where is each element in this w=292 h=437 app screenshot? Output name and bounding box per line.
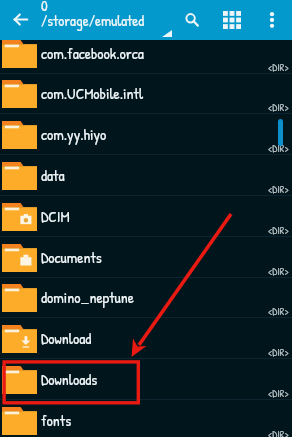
button[interactable]: com.yy.hiyo xyxy=(0,114,292,155)
button[interactable]: More options xyxy=(252,0,292,40)
button[interactable]: com.facebook.orca xyxy=(0,33,292,74)
button[interactable]: Back xyxy=(0,0,40,40)
staticText: <DIR> xyxy=(268,386,289,400)
button[interactable]: DCIM xyxy=(0,196,292,237)
button[interactable]: domino_neptune xyxy=(0,277,292,318)
staticText: 0 xyxy=(41,0,48,15)
staticText: DCIM xyxy=(41,206,70,227)
staticText: <DIR> xyxy=(268,427,289,437)
staticText: Documents xyxy=(41,247,102,268)
button[interactable]: fonts xyxy=(0,400,292,437)
button[interactable]: Download xyxy=(0,318,292,359)
staticText: /storage/emulated xyxy=(41,10,144,30)
button[interactable]: Grid view xyxy=(212,0,252,40)
staticText: com.facebook.orca xyxy=(41,43,144,64)
staticText: <DIR> xyxy=(268,141,289,155)
staticText: domino_neptune xyxy=(41,287,134,308)
button[interactable]: com.UCMobile.intl xyxy=(0,73,292,114)
staticText: <DIR> xyxy=(268,182,289,196)
button[interactable]: Downloads xyxy=(0,359,292,400)
staticText: <DIR> xyxy=(268,100,289,114)
button[interactable]: Documents xyxy=(0,237,292,278)
staticText: <DIR> xyxy=(268,60,289,74)
staticText: fonts xyxy=(41,410,72,431)
staticText: com.UCMobile.intl xyxy=(41,83,144,104)
staticText: <DIR> xyxy=(268,304,289,318)
staticText: com.yy.hiyo xyxy=(41,124,107,145)
staticText: <DIR> xyxy=(268,264,289,278)
button[interactable]: Search xyxy=(172,0,212,40)
staticText: <DIR> xyxy=(268,345,289,359)
staticText: <DIR> xyxy=(268,223,289,237)
staticText: data xyxy=(41,165,65,186)
staticText: Downloads xyxy=(41,369,98,390)
staticText: Download xyxy=(41,328,92,349)
button[interactable]: data xyxy=(0,155,292,196)
